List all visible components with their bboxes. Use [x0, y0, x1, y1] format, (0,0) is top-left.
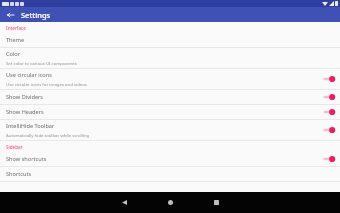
staticText: Color [6, 50, 21, 58]
button[interactable]: Recent apps [193, 192, 239, 213]
staticText: Shortcuts [6, 170, 32, 178]
button[interactable]: Show Dividers [0, 90, 340, 104]
staticText: Show Headers [6, 108, 44, 116]
button[interactable]: Theme [0, 33, 340, 47]
staticText: Interface [6, 25, 27, 31]
staticText: Show Dividers [6, 93, 44, 101]
button[interactable]: Color [0, 48, 340, 68]
staticText: Show shortcuts [6, 155, 47, 163]
button[interactable]: Show shortcuts [0, 152, 340, 166]
staticText: Use circular icons [6, 71, 52, 79]
button[interactable]: Shortcuts [0, 167, 340, 181]
staticText: IntelliHide Toolbar [6, 122, 55, 130]
staticText: Set color to various UI components [6, 60, 77, 66]
staticText: Automatically hide toolbar while scrolli… [6, 132, 90, 138]
staticText: Theme [6, 36, 25, 44]
button[interactable]: Back [4, 9, 16, 21]
button[interactable]: Show Headers [0, 105, 340, 119]
button[interactable]: Back [101, 192, 147, 213]
button[interactable]: Use circular icons [0, 69, 340, 89]
button[interactable]: Toggle on [321, 73, 337, 85]
button[interactable]: Toggle on [321, 106, 337, 118]
button[interactable]: Home [147, 192, 193, 213]
staticText: Use circular icons for images and videos [6, 81, 87, 87]
button[interactable]: Toggle on [321, 153, 337, 165]
button[interactable]: Toggle on [321, 91, 337, 103]
button[interactable]: Toggle on [321, 124, 337, 136]
staticText: Sidebar [6, 144, 23, 150]
staticText: Settings [21, 10, 51, 20]
button[interactable]: IntelliHide Toolbar [0, 120, 340, 140]
